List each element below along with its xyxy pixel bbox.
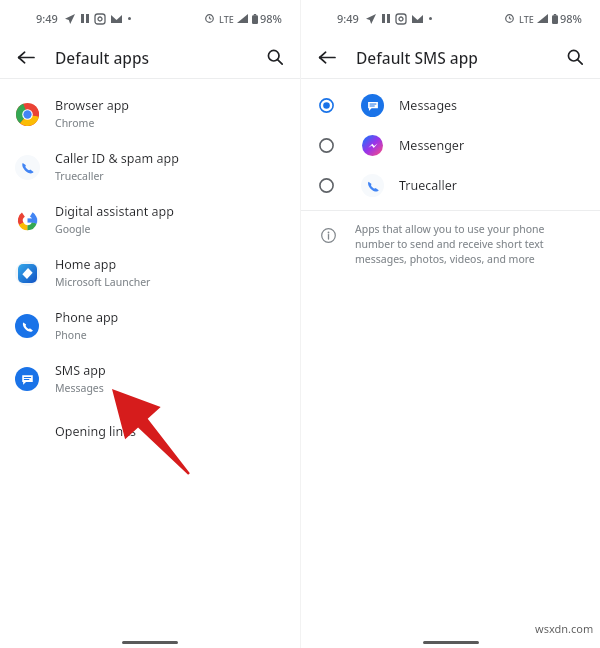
staticText: Truecaller xyxy=(55,169,104,183)
staticText: Browser app xyxy=(55,97,130,114)
staticText: Truecaller xyxy=(399,177,457,194)
staticText: LTE xyxy=(519,13,534,25)
staticText: Chrome xyxy=(55,116,95,130)
staticText: wsxdn.com xyxy=(535,621,594,636)
staticText: Phone xyxy=(55,328,87,342)
staticText: Opening links xyxy=(55,423,136,440)
button[interactable]: Back xyxy=(8,40,42,74)
button[interactable]: Home app xyxy=(0,246,300,299)
staticText: Default SMS app xyxy=(356,47,478,68)
staticText: Messages xyxy=(55,381,104,395)
staticText: 9:49 xyxy=(337,11,359,26)
staticText: Digital assistant app xyxy=(55,203,174,220)
button[interactable]: Caller ID & spam app xyxy=(0,140,300,193)
button[interactable]: Opening links xyxy=(0,405,300,458)
staticText: Google xyxy=(55,222,91,236)
staticText: 98% xyxy=(260,11,282,26)
staticText: Apps that allow you to use your phone nu… xyxy=(355,222,580,266)
staticText: Phone app xyxy=(55,309,119,326)
staticText: Messages xyxy=(399,97,458,114)
button[interactable]: Browser app xyxy=(0,87,300,140)
staticText: Microsoft Launcher xyxy=(55,275,151,289)
button[interactable]: Search xyxy=(258,40,292,74)
staticText: 98% xyxy=(560,11,582,26)
staticText: SMS app xyxy=(55,362,106,379)
button[interactable]: Messages xyxy=(301,85,600,125)
staticText: Home app xyxy=(55,256,117,273)
staticText: 9:49 xyxy=(36,11,58,26)
button[interactable]: SMS app xyxy=(0,352,300,405)
button[interactable]: Phone app xyxy=(0,299,300,352)
button[interactable]: Truecaller xyxy=(301,165,600,205)
staticText: Caller ID & spam app xyxy=(55,150,179,167)
button[interactable]: Messenger xyxy=(301,125,600,165)
button[interactable]: Search xyxy=(558,40,592,74)
button[interactable]: Back xyxy=(309,40,343,74)
staticText: LTE xyxy=(219,13,234,25)
staticText: Default apps xyxy=(55,47,150,68)
staticText: Messenger xyxy=(399,137,465,154)
button[interactable]: Digital assistant app xyxy=(0,193,300,246)
